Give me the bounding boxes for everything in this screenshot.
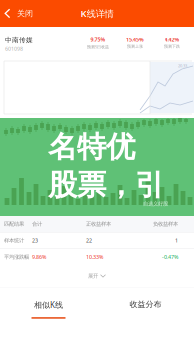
staticText: 展开 xyxy=(88,273,98,279)
staticText: -0.47% xyxy=(162,253,178,261)
staticText: 4.42% xyxy=(164,36,179,43)
staticText: 样本统计 xyxy=(4,237,24,244)
staticText: 预测5日收益 xyxy=(87,44,109,49)
staticText: 合计 xyxy=(32,221,42,227)
staticText: 预测上涨 xyxy=(127,44,143,49)
staticText: 中南传媒 xyxy=(5,36,33,44)
staticText: 9.75% xyxy=(90,36,105,43)
button[interactable]: 关闭 xyxy=(0,0,39,27)
button[interactable]: 展开 xyxy=(0,265,194,287)
staticText: 收益分布 xyxy=(129,299,161,309)
button[interactable]: 收益分布 xyxy=(97,287,194,328)
staticText: 名特优 xyxy=(48,129,135,165)
staticText: 10.33% xyxy=(86,253,103,261)
staticText: 22 xyxy=(86,237,92,244)
staticText: 自选义好股 xyxy=(143,200,168,207)
staticText: 正收益样本 xyxy=(86,221,111,227)
staticText: 匹配结果 xyxy=(4,221,24,227)
staticText: 预测下跌 xyxy=(164,44,180,49)
button[interactable]: 相似K线 xyxy=(0,287,97,328)
staticText: 1 xyxy=(175,237,178,244)
staticText: 股票，引 xyxy=(48,167,164,203)
staticText: 23 xyxy=(32,237,38,244)
staticText: 平均涨跌幅 xyxy=(4,254,29,260)
staticText: K线详情 xyxy=(80,7,113,20)
staticText: 601098 xyxy=(5,45,23,52)
staticText: 9.86% xyxy=(32,253,46,261)
staticText: 相似K线 xyxy=(34,299,63,310)
staticText: 20.33 xyxy=(178,63,187,68)
staticText: 负收益样本 xyxy=(153,221,178,227)
staticText: 关闭 xyxy=(17,9,33,18)
staticText: 15.45% xyxy=(126,36,144,43)
